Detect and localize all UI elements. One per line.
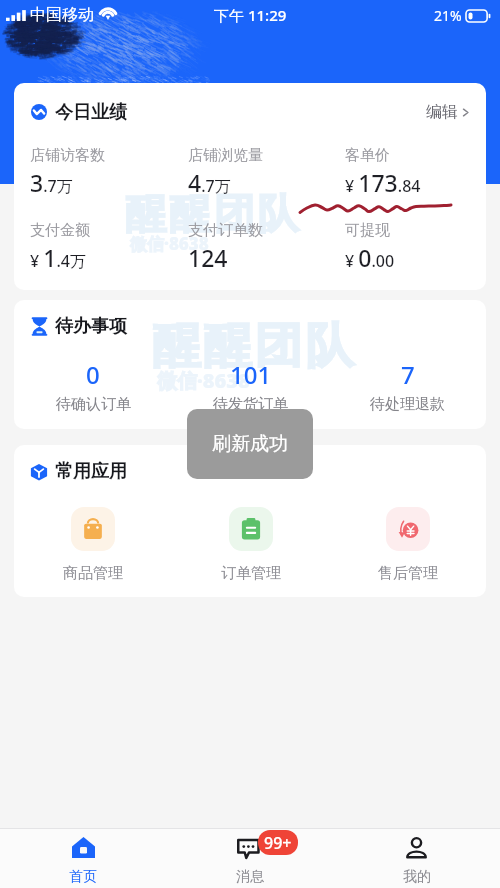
staticText: 醒醒团队 <box>124 189 300 241</box>
staticText: 订单管理 <box>221 564 281 583</box>
button[interactable]: 订单管理 <box>172 507 329 583</box>
staticText: ¥ 173.84 <box>345 167 421 198</box>
button[interactable]: 我的 <box>333 829 500 888</box>
button[interactable]: 编辑 <box>424 98 473 126</box>
staticText: 待办事项 <box>55 315 127 338</box>
staticText: 醒醒团队 <box>151 316 355 376</box>
staticText: 99+ <box>264 832 292 854</box>
staticText: 消息 <box>236 868 264 886</box>
staticText: 微信·8638 <box>130 232 209 255</box>
button[interactable]: 客单价 <box>329 146 486 198</box>
staticText: 支付金额 <box>30 221 90 240</box>
button[interactable]: 7 <box>329 358 486 414</box>
staticText: 刷新成功 <box>212 432 288 456</box>
button[interactable]: 0 <box>14 358 172 414</box>
staticText: 待发货订单 <box>213 395 288 414</box>
staticText: 编辑 <box>426 102 458 122</box>
staticText: 待确认订单 <box>56 395 131 414</box>
staticText: 常用应用 <box>55 460 127 483</box>
button[interactable]: 消息 <box>166 829 333 888</box>
staticText: 7 <box>401 358 415 391</box>
staticText: 下午 11:29 <box>214 5 287 25</box>
staticText: ¥ 0.00 <box>345 242 395 273</box>
button[interactable]: 店铺浏览量 <box>172 146 329 198</box>
staticText: 21% <box>434 6 462 25</box>
staticText: 首页 <box>69 868 97 886</box>
button[interactable]: 101 <box>172 358 329 414</box>
button[interactable]: 可提现 <box>329 221 486 273</box>
button[interactable]: 商品管理 <box>14 507 172 583</box>
button[interactable]: 支付金额 <box>14 221 172 273</box>
staticText: 微信·8638 <box>157 367 250 394</box>
staticText: 3.7万 <box>30 167 73 198</box>
staticText: 101 <box>230 358 272 391</box>
staticText: ¥ 1.4万 <box>30 242 86 273</box>
staticText: 店铺浏览量 <box>188 146 263 165</box>
staticText: 4.7万 <box>188 167 231 198</box>
button[interactable]: 支付订单数 <box>172 221 329 273</box>
staticText: 客单价 <box>345 146 390 165</box>
button[interactable]: 首页 <box>0 829 166 888</box>
button[interactable]: 售后管理 <box>329 507 486 583</box>
button[interactable]: 店铺访客数 <box>14 146 172 198</box>
staticText: 售后管理 <box>378 564 438 583</box>
staticText: 可提现 <box>345 221 390 240</box>
staticText: 待处理退款 <box>370 395 445 414</box>
staticText: 店铺访客数 <box>30 146 105 165</box>
staticText: 支付订单数 <box>188 221 263 240</box>
staticText: 商品管理 <box>63 564 123 583</box>
staticText: 今日业绩 <box>55 101 127 124</box>
staticText: 124 <box>188 242 228 273</box>
staticText: 中国移动 <box>30 5 94 25</box>
staticText: 我的 <box>403 868 431 886</box>
other: 消息 <box>217 836 283 861</box>
staticText: 0 <box>86 358 100 391</box>
